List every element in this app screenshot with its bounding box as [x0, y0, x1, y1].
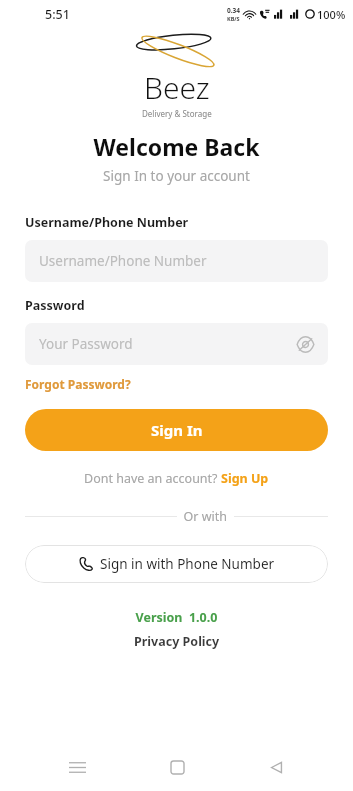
staticText: Privacy Policy	[134, 633, 220, 650]
staticText: Username/Phone Number	[25, 214, 189, 231]
button[interactable]: Your Password	[25, 323, 328, 365]
staticText: Sign in with Phone Number	[100, 555, 275, 573]
staticText: 5:51	[45, 6, 70, 23]
button[interactable]: Forgot Password?	[25, 376, 131, 392]
button[interactable]: Back	[254, 745, 298, 789]
staticText: Sign In	[151, 420, 203, 440]
staticText: Sign In to your account	[0, 167, 353, 185]
button[interactable]: Show password	[294, 333, 316, 355]
staticText: KB/S	[227, 15, 240, 22]
staticText: Forgot Password?	[25, 376, 131, 392]
staticText: 100%	[317, 7, 346, 22]
button[interactable]: Home	[155, 745, 199, 789]
staticText: Your Password	[39, 335, 133, 353]
button[interactable]: Recent apps	[55, 745, 99, 789]
button[interactable]: Privacy Policy	[25, 633, 328, 650]
button[interactable]: Sign Up	[221, 470, 269, 487]
staticText: Password	[25, 297, 85, 314]
staticText: 0.34	[227, 6, 240, 15]
staticText: Username/Phone Number	[39, 252, 207, 270]
staticText: Or with	[177, 508, 234, 525]
staticText: Version 1.0.0	[25, 609, 328, 626]
button[interactable]: Username/Phone Number	[25, 240, 328, 282]
staticText: Sign Up	[221, 470, 269, 487]
button[interactable]: Sign in with Phone Number	[25, 545, 328, 583]
button[interactable]: Sign In	[25, 409, 328, 451]
staticText: Delivery & Storage	[142, 108, 212, 119]
staticText: Welcome Back	[0, 131, 353, 162]
staticText: Beez	[144, 67, 210, 108]
staticText: Dont have an account?	[84, 470, 221, 487]
